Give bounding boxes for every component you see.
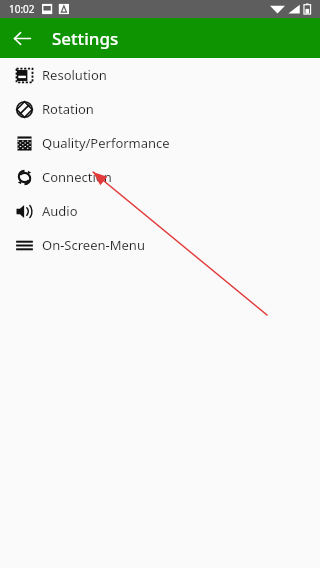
button[interactable]: On-Screen-Menu xyxy=(0,228,320,262)
button[interactable]: Quality/Performance xyxy=(0,126,320,160)
staticText: 10:02 xyxy=(9,2,35,16)
staticText: Audio xyxy=(42,202,78,220)
staticText: Resolution xyxy=(42,66,107,84)
button[interactable]: Resolution xyxy=(0,58,320,92)
staticText: Settings xyxy=(52,27,119,50)
staticText: On-Screen-Menu xyxy=(42,236,145,254)
button[interactable]: Audio xyxy=(0,194,320,228)
staticText: Quality/Performance xyxy=(42,134,170,152)
staticText: Connection xyxy=(42,168,112,186)
staticText: Rotation xyxy=(42,100,94,118)
button[interactable]: Back xyxy=(6,22,38,54)
button[interactable]: Connection xyxy=(0,160,320,194)
button[interactable]: Rotation xyxy=(0,92,320,126)
